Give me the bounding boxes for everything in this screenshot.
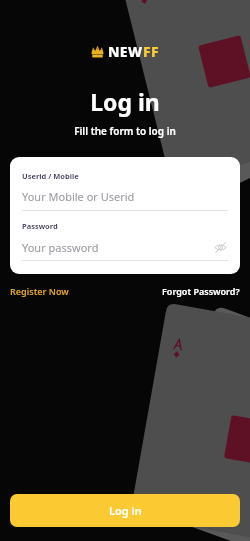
staticText: Fill the form to log in [0, 124, 250, 138]
staticText: Your password [22, 240, 99, 255]
button[interactable]: Your Mobile or Userid [22, 189, 228, 204]
button[interactable]: Log in [10, 494, 240, 527]
staticText: Forgot Password? [162, 285, 240, 297]
button[interactable]: Show password [212, 239, 228, 255]
staticText: Your Mobile or Userid [22, 189, 135, 204]
button[interactable]: Forgot Password? [162, 285, 240, 297]
staticText: FF [143, 42, 159, 61]
staticText: Log in [0, 86, 250, 117]
staticText: Register Now [10, 285, 69, 297]
staticText: Log in [109, 503, 142, 518]
staticText: Password [22, 221, 58, 231]
staticText: Userid / Mobile [22, 171, 79, 181]
staticText: NEW [108, 42, 143, 61]
button[interactable]: Register Now [10, 285, 69, 297]
button[interactable]: Your password [22, 239, 212, 255]
